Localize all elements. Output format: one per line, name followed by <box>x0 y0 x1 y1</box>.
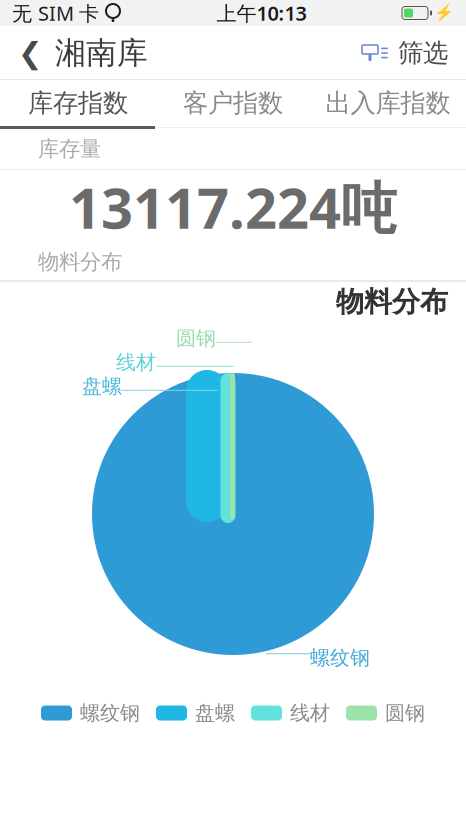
staticText: 盘螺 <box>195 701 235 725</box>
staticText: 圆钢 <box>176 326 216 351</box>
staticText: 上午10:13 <box>216 0 306 26</box>
staticText: 出入库指数 <box>325 87 450 118</box>
staticText: 物料分布 <box>336 285 448 319</box>
button[interactable]: 出入库指数 <box>310 80 465 126</box>
staticText: 库存指数 <box>28 87 128 118</box>
staticText: 线材 <box>290 701 330 725</box>
staticText: 客户指数 <box>183 87 283 118</box>
button[interactable]: 筛选 <box>341 26 466 80</box>
button[interactable]: ❮ <box>0 26 166 80</box>
staticText: 螺纹钢 <box>310 645 370 670</box>
staticText: 库存量 <box>38 136 101 162</box>
staticText: ❮ <box>18 36 43 70</box>
button[interactable]: 库存指数 <box>0 80 155 126</box>
staticText: 圆钢 <box>385 701 425 725</box>
staticText: 物料分布 <box>38 249 122 275</box>
staticText: ⚡ <box>434 4 454 22</box>
staticText: 湘南库 <box>55 34 148 72</box>
staticText: 螺纹钢 <box>80 701 140 725</box>
staticText: 盘螺 <box>82 374 122 399</box>
button[interactable]: 客户指数 <box>155 80 310 126</box>
staticText: 线材 <box>116 350 156 375</box>
staticText: 筛选 <box>398 37 448 68</box>
staticText: 13117.224吨 <box>69 170 397 244</box>
staticText: 无 SIM 卡 <box>12 0 99 26</box>
